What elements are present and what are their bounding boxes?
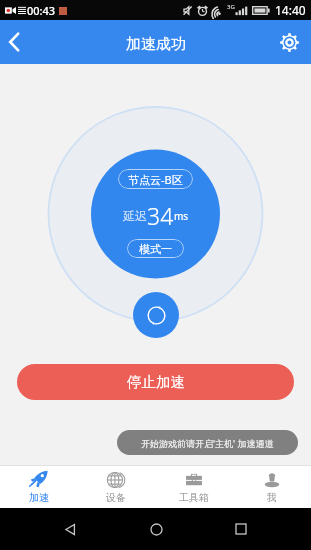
staticText: 加速 <box>29 491 49 504</box>
button[interactable]: 设备 <box>77 466 155 508</box>
button[interactable]: 节点云-B区 <box>128 169 183 189</box>
button[interactable]: Refresh <box>133 292 179 338</box>
staticText: 工具箱 <box>179 491 209 504</box>
staticText: 节点云-B区 <box>128 172 183 187</box>
staticText: 我 <box>267 491 277 504</box>
button[interactable]: Settings <box>267 20 311 64</box>
staticText: 模式一 <box>139 242 172 256</box>
staticText: 14:40 <box>275 2 306 18</box>
button[interactable]: Recents <box>226 514 256 544</box>
staticText: 停止加速 <box>127 373 185 391</box>
staticText: ms <box>174 209 189 223</box>
button[interactable]: Home <box>141 514 171 544</box>
staticText: 3G <box>227 3 235 11</box>
button[interactable]: 加速 <box>0 466 77 508</box>
button[interactable]: Back <box>55 514 85 544</box>
staticText: 开始游戏前请开启'主机' 加速通道 <box>141 437 274 449</box>
button[interactable]: 停止加速 <box>17 364 294 400</box>
staticText: 34 <box>147 200 174 226</box>
staticText: 设备 <box>106 491 126 504</box>
staticText: 加速成功 <box>126 35 186 54</box>
button[interactable]: Back <box>0 20 28 64</box>
button[interactable]: 工具箱 <box>155 466 233 508</box>
button[interactable]: 我 <box>233 466 311 508</box>
staticText: 00:43 <box>27 3 56 18</box>
button[interactable]: 模式一 <box>139 239 172 258</box>
staticText: 延迟 <box>123 208 147 223</box>
